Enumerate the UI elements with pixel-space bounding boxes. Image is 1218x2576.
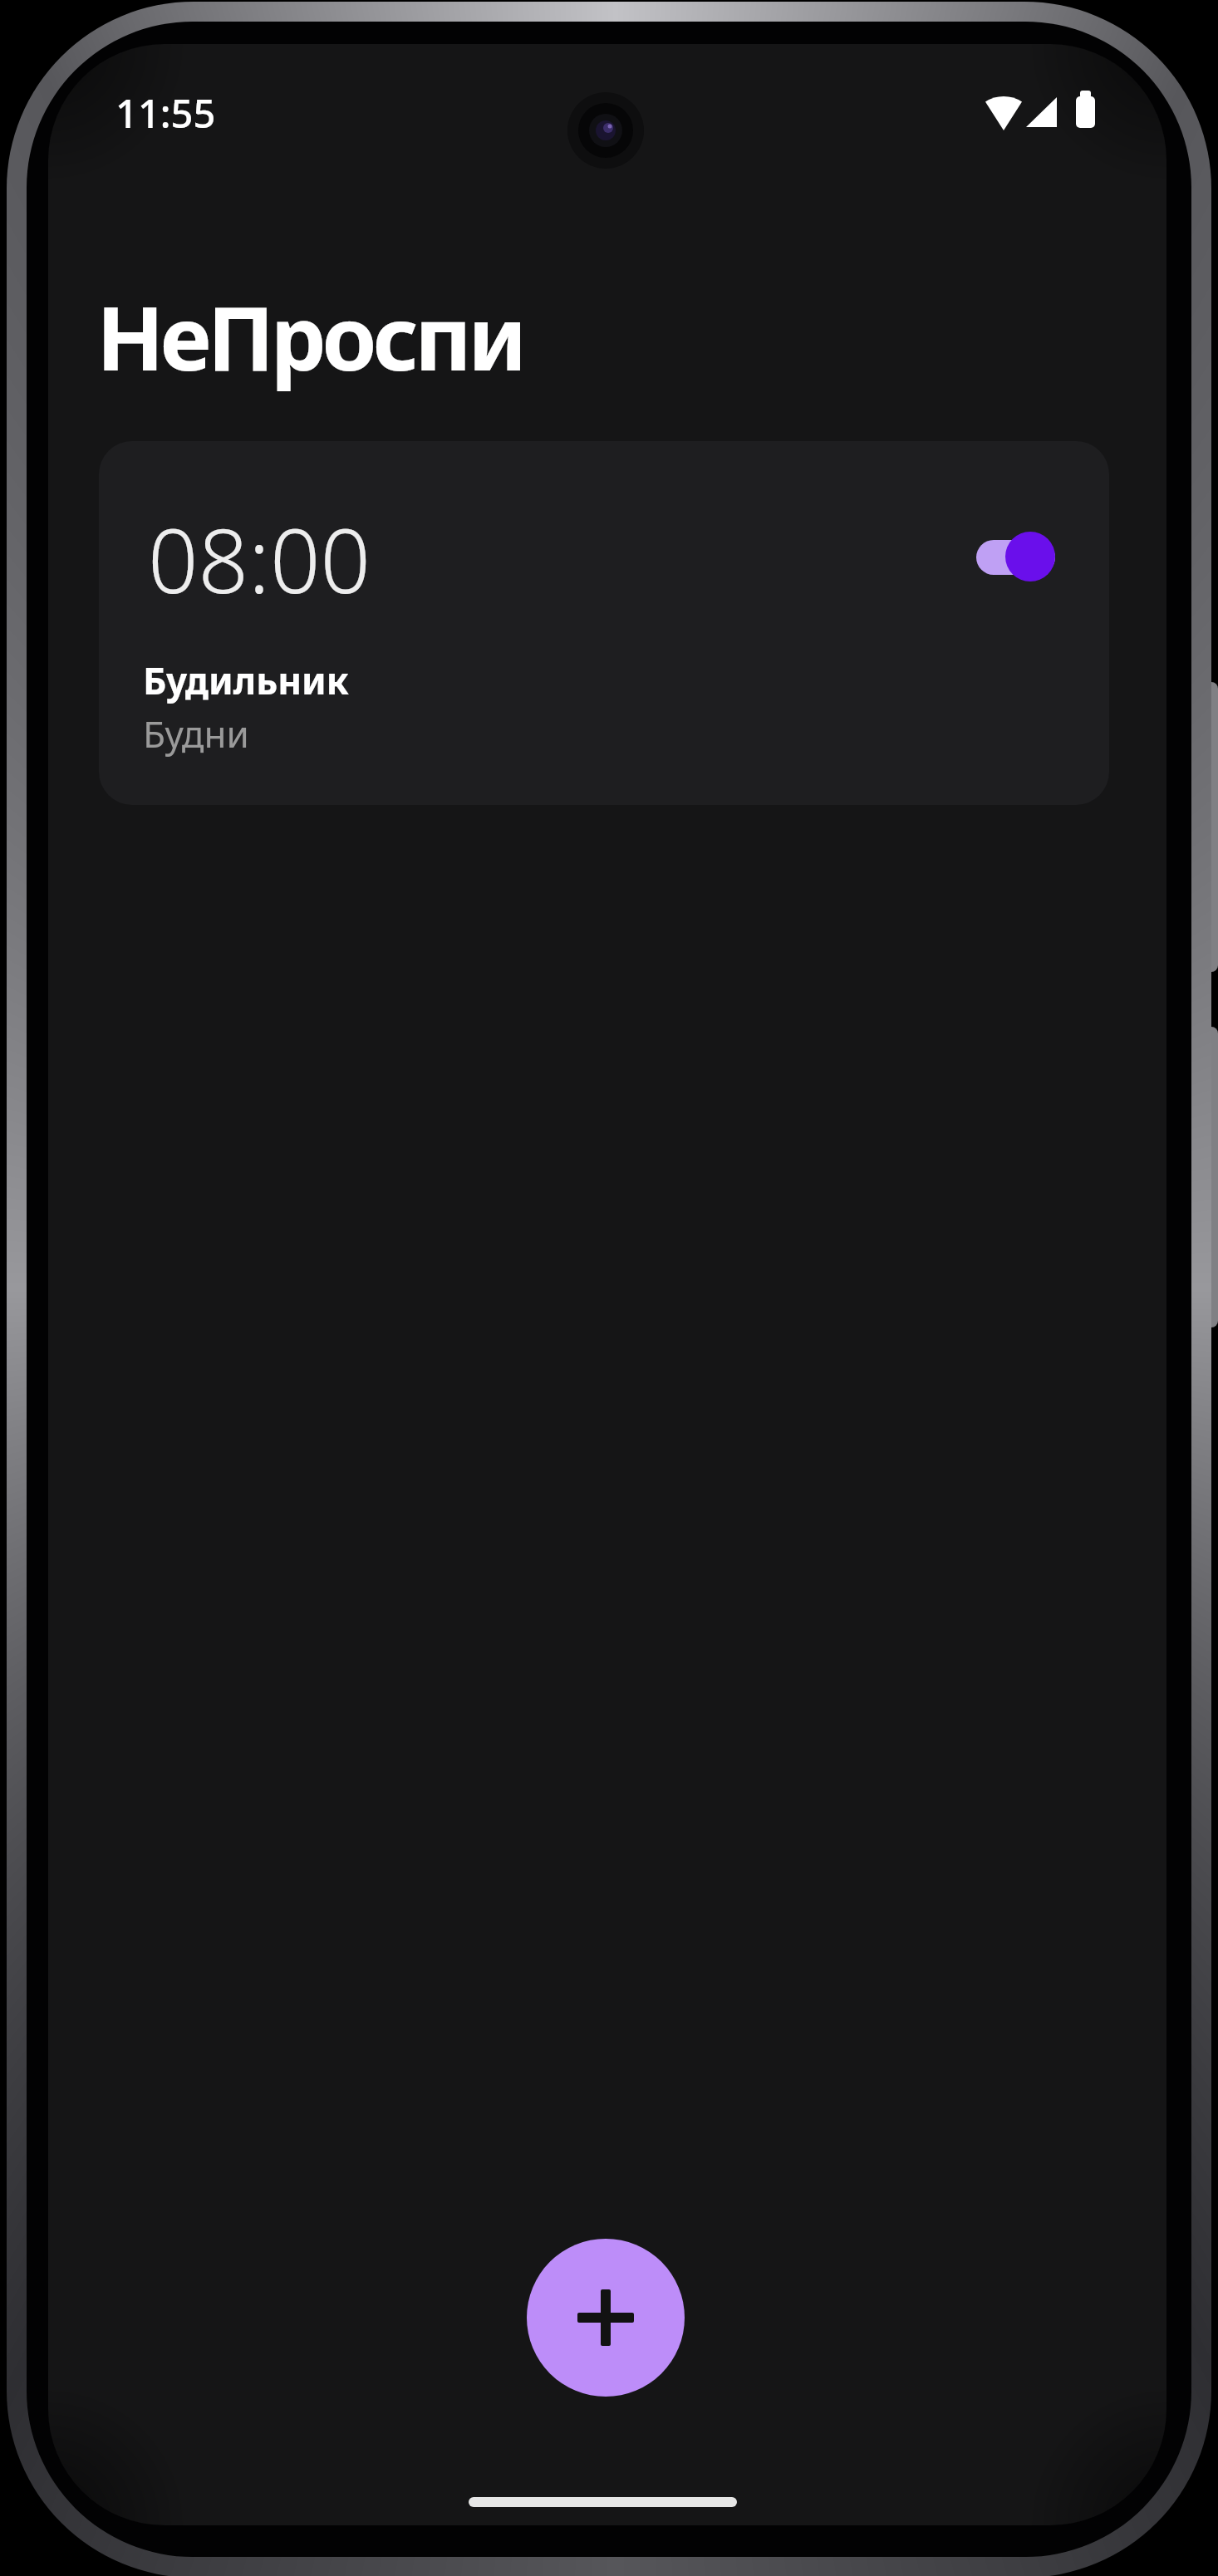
staticText: Будни	[143, 709, 249, 758]
staticText: 11:55	[115, 86, 216, 140]
button[interactable]: 08:00	[99, 441, 1109, 805]
button[interactable]	[976, 540, 1055, 575]
staticText: 08:00	[148, 499, 371, 619]
button[interactable]	[527, 2239, 685, 2397]
staticText: Будильник	[143, 655, 349, 705]
staticText: НеПроспи	[96, 277, 523, 396]
